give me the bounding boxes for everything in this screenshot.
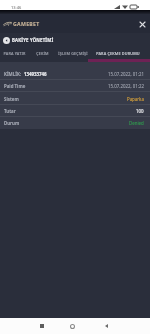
staticText: 15.07.2022, 01:21 — [108, 71, 144, 77]
button[interactable]: Sistem — [0, 92, 150, 105]
staticText: PARA ÇEKME DURUMU — [96, 51, 140, 56]
button[interactable]: İŞLEM GEÇMİŞİ — [57, 47, 88, 62]
staticText: Sistem — [4, 96, 19, 102]
staticText: Paid Time — [4, 83, 26, 89]
button[interactable]: PARA ÇEKME DURUMU — [88, 47, 150, 62]
button[interactable]: Tutar — [0, 105, 150, 117]
button[interactable]: Home — [66, 318, 78, 334]
button[interactable]: Recents — [36, 318, 48, 334]
staticText: Durum — [4, 120, 20, 126]
button[interactable]: Close — [134, 16, 150, 32]
staticText: PARA YATIR — [3, 51, 26, 56]
staticText: 134933746 — [24, 71, 47, 77]
staticText: KİMLİK: — [4, 71, 22, 77]
staticText: 13:46 — [11, 5, 22, 10]
button[interactable]: Paid Time — [0, 80, 150, 92]
staticText: ÇEKİM — [36, 51, 49, 56]
staticText: 15.07.2022, 01:22 — [108, 83, 144, 89]
staticText: Denied — [129, 120, 144, 126]
staticText: Paparka — [127, 96, 144, 102]
staticText: 100 — [136, 108, 144, 114]
button[interactable]: Durum — [0, 117, 150, 129]
staticText: GAMEBET — [13, 20, 40, 27]
button[interactable]: Back — [3, 37, 10, 44]
button[interactable]: Back — [100, 318, 112, 334]
button[interactable]: ÇEKİM — [28, 47, 57, 62]
button[interactable]: PARA YATIR — [0, 47, 28, 62]
staticText: İŞLEM GEÇMİŞİ — [58, 51, 88, 56]
staticText: BAKİYE YÖNETİMİ — [12, 37, 54, 43]
button[interactable]: KİMLİK: — [0, 67, 150, 80]
staticText: Tutar — [4, 108, 16, 114]
